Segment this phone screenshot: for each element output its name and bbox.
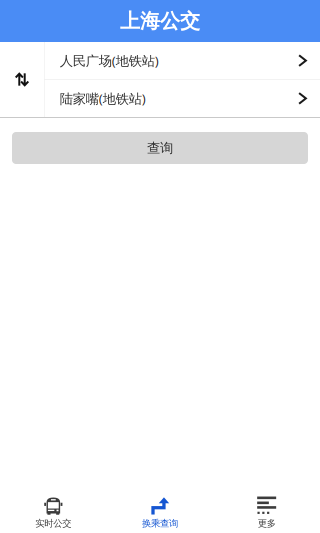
staticText: 上海公交 — [120, 8, 200, 34]
button[interactable]: 陆家嘴(地铁站) — [45, 80, 320, 117]
staticText: 更多 — [258, 517, 276, 529]
button[interactable]: 人民广场(地铁站) — [45, 42, 320, 79]
button[interactable]: 实时公交 — [0, 487, 107, 533]
button[interactable]: 交换起终点 — [0, 42, 44, 117]
staticText: 查询 — [147, 140, 173, 156]
button[interactable]: 更多 — [213, 487, 320, 533]
staticText: 人民广场(地铁站) — [60, 52, 159, 69]
staticText: 换乘查询 — [142, 517, 178, 529]
staticText: 陆家嘴(地铁站) — [60, 89, 146, 107]
staticText: 实时公交 — [35, 517, 71, 529]
button[interactable]: 查询 — [12, 132, 308, 164]
button[interactable]: 换乘查询 — [107, 487, 213, 533]
